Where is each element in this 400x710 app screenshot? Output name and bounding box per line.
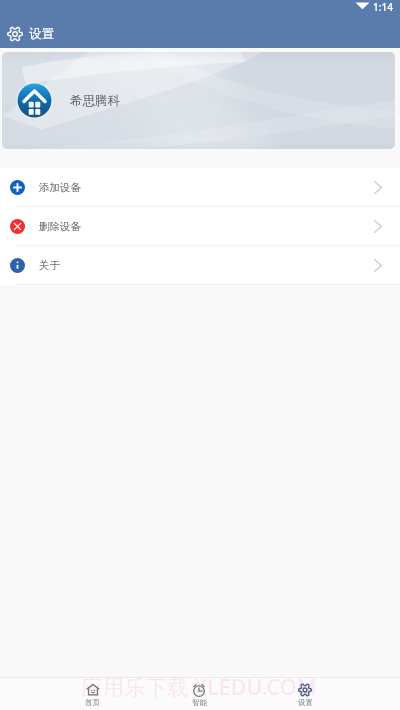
staticText: 应用乐下载 XLEDU.COM (81, 672, 317, 701)
button[interactable]: Settings (0, 19, 60, 48)
staticText: 关于 (39, 259, 60, 272)
staticText: 1:14 (373, 0, 393, 14)
button[interactable]: 添加设备 (0, 168, 400, 206)
button[interactable]: 设置 (252, 678, 358, 710)
button[interactable]: 关于 (0, 246, 400, 284)
staticText: 删除设备 (39, 220, 81, 233)
staticText: 添加设备 (39, 181, 81, 194)
button[interactable]: 删除设备 (0, 207, 400, 245)
staticText: 希思腾科 (70, 93, 120, 109)
other: Settings (6, 25, 23, 42)
staticText: 设置 (298, 698, 313, 707)
staticText: 设置 (29, 26, 54, 42)
button[interactable]: 智能 (146, 678, 252, 710)
button[interactable]: 首页 (39, 678, 146, 710)
staticText: 智能 (192, 698, 207, 707)
staticText: 首页 (85, 698, 100, 707)
